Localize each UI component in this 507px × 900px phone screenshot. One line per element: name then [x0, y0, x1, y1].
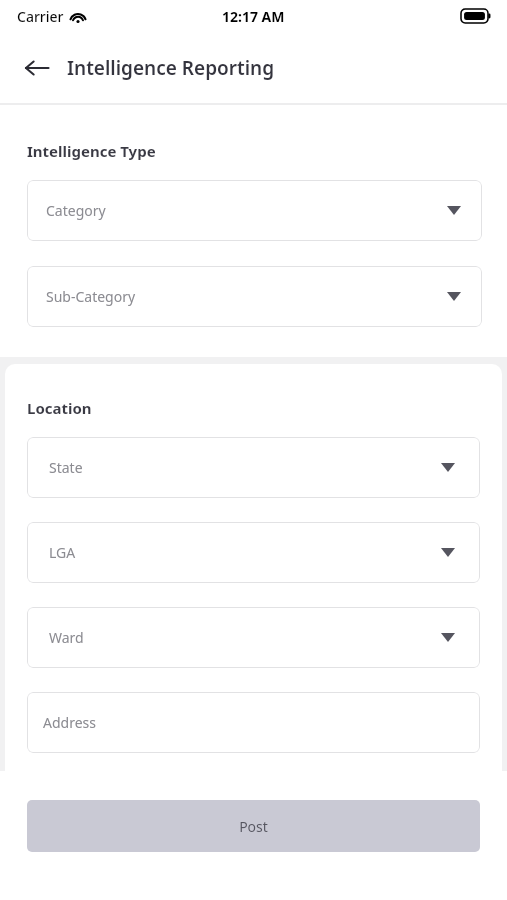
button[interactable]: Back	[18, 49, 56, 87]
staticText: Location	[27, 398, 92, 418]
staticText: Post	[239, 817, 268, 836]
staticText: Address	[43, 713, 96, 732]
button[interactable]: LGA	[27, 522, 480, 583]
staticText: Sub-Category	[46, 287, 136, 306]
button[interactable]: Sub-Category	[27, 266, 482, 327]
staticText: LGA	[49, 543, 76, 562]
button[interactable]: State	[27, 437, 480, 498]
button[interactable]: Address	[27, 692, 480, 753]
staticText: Category	[46, 201, 106, 220]
button[interactable]: Ward	[27, 607, 480, 668]
button[interactable]: Post	[27, 800, 480, 852]
staticText: Intelligence Reporting	[67, 55, 275, 81]
staticText: State	[49, 458, 83, 477]
staticText: Intelligence Type	[27, 141, 156, 161]
staticText: Carrier	[17, 7, 64, 26]
staticText: 12:17 AM	[222, 7, 285, 26]
staticText: Ward	[49, 628, 84, 647]
button[interactable]: Category	[27, 180, 482, 241]
